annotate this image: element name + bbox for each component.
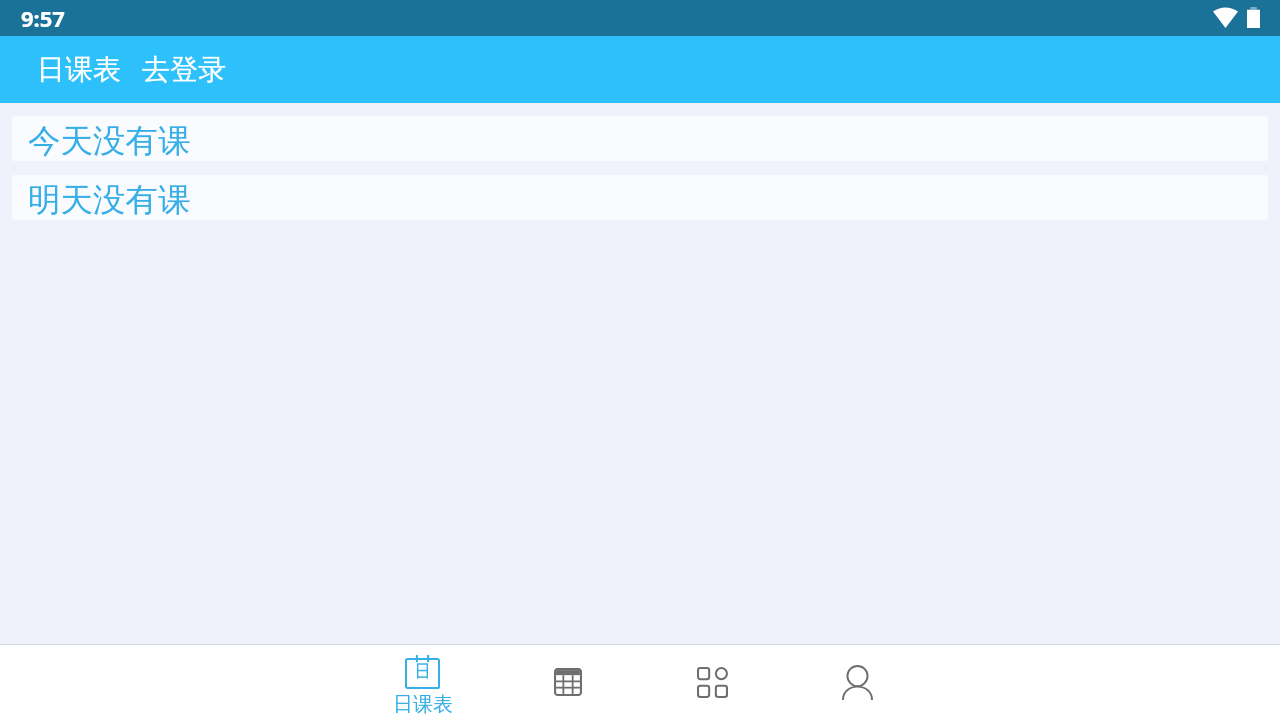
button[interactable]: 今天没有课 [12, 116, 1268, 161]
staticText: 日课表 [393, 692, 453, 717]
staticText: 去登录 [142, 52, 226, 87]
button[interactable]: 去登录 [138, 46, 230, 93]
staticText: 日课表 [37, 52, 121, 87]
button[interactable]: 明天没有课 [12, 175, 1268, 220]
other: Battery [1247, 7, 1260, 28]
other: Wi-Fi [1213, 7, 1238, 28]
button[interactable]: Apps [640, 644, 785, 720]
staticText: 今天没有课 [28, 121, 191, 161]
staticText: 明天没有课 [28, 180, 191, 220]
button[interactable]: Timetable [495, 644, 640, 720]
staticText: 9:57 [21, 3, 65, 33]
button[interactable]: Profile [785, 644, 930, 720]
button[interactable]: 日课表 [33, 46, 125, 93]
button[interactable]: 日课表 [350, 644, 495, 720]
